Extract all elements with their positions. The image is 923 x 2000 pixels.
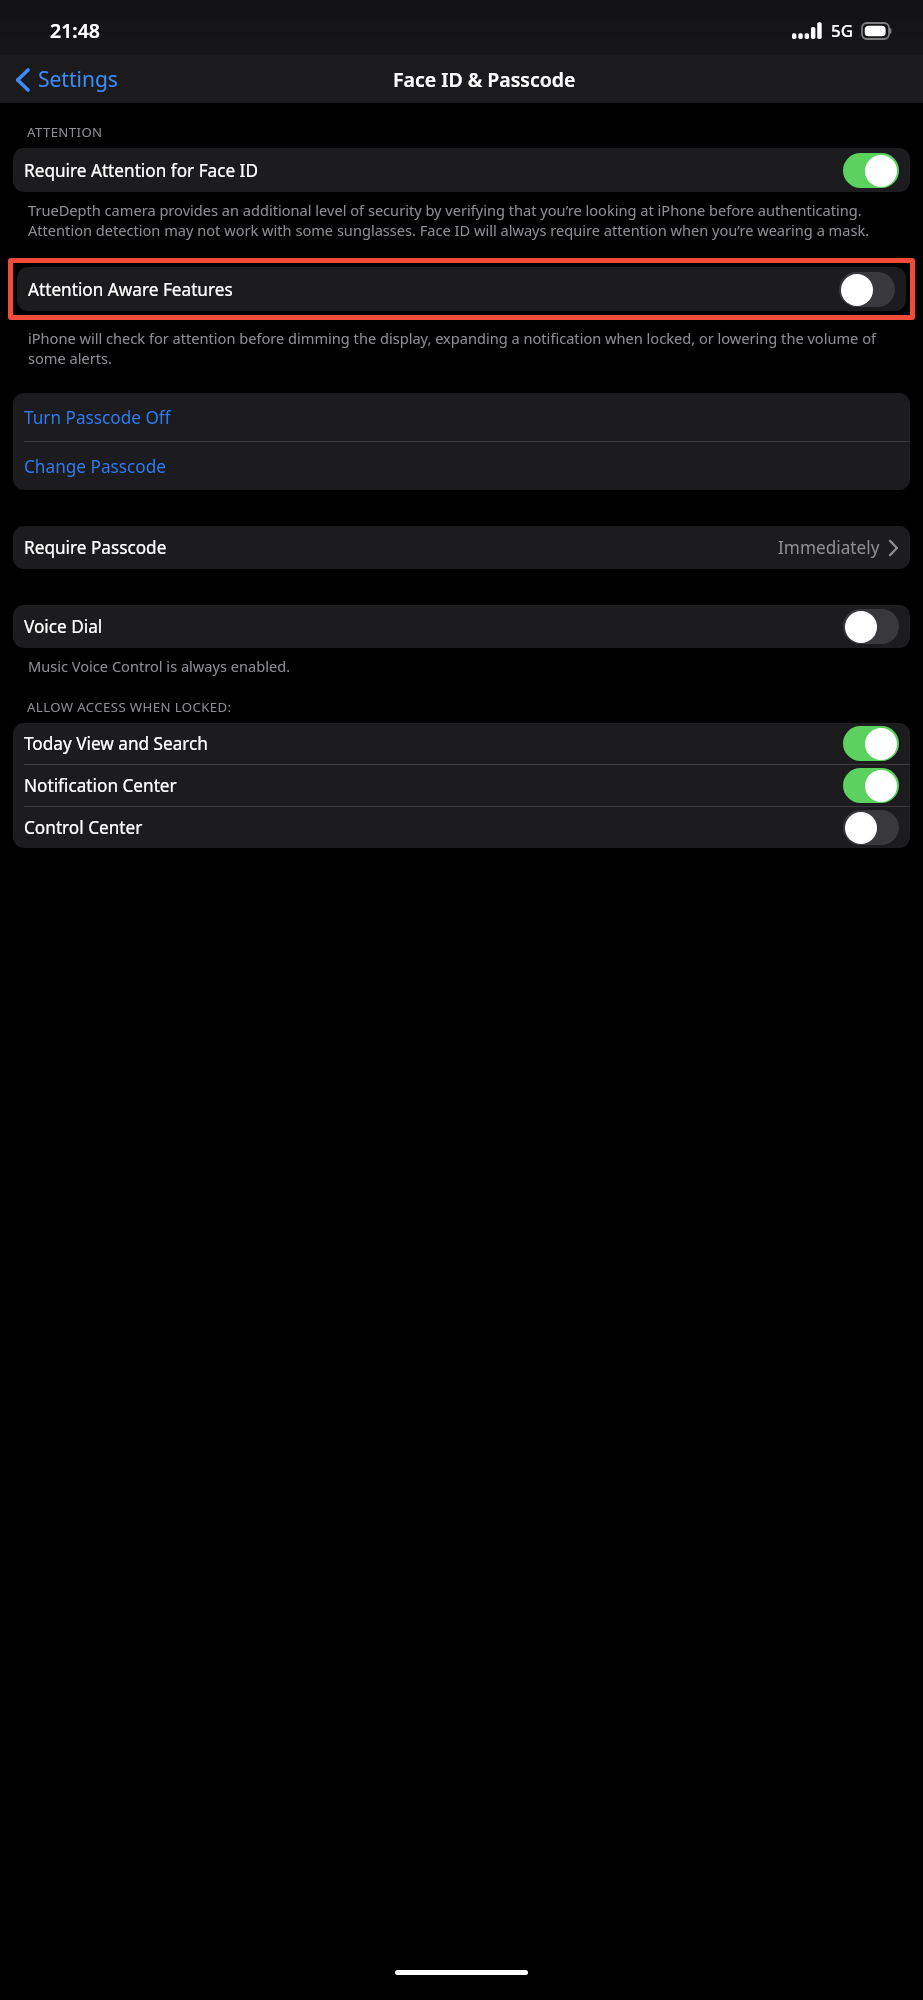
staticText: 21:48 <box>50 17 100 44</box>
staticText: Face ID & Passcode <box>393 66 576 93</box>
staticText: ALLOW ACCESS WHEN LOCKED: <box>27 698 232 716</box>
button[interactable]: Control Center <box>13 807 910 848</box>
staticText: TrueDepth camera provides an additional … <box>28 200 895 241</box>
staticText: Voice Dial <box>24 615 843 638</box>
staticText: Today View and Search <box>24 732 843 755</box>
staticText: 5G <box>831 19 854 42</box>
staticText: Immediately <box>778 536 880 559</box>
staticText: Change Passcode <box>24 455 166 478</box>
staticText: Settings <box>38 65 118 94</box>
button[interactable]: Change Passcode <box>13 442 910 490</box>
button[interactable]: Toggle off <box>839 272 895 307</box>
button[interactable]: Toggle off <box>843 609 899 644</box>
staticText: ATTENTION <box>27 123 103 141</box>
staticText: Turn Passcode Off <box>24 406 171 429</box>
button[interactable]: Toggle on <box>843 153 899 188</box>
button[interactable]: Turn Passcode Off <box>13 393 910 441</box>
button[interactable]: Settings <box>0 61 128 98</box>
staticText: Control Center <box>24 816 843 839</box>
button[interactable]: Voice Dial <box>13 605 910 648</box>
button[interactable]: Notification Center <box>13 765 910 806</box>
button[interactable]: Today View and Search <box>13 723 910 764</box>
button[interactable]: Require Attention for Face ID <box>13 148 910 192</box>
staticText: Require Passcode <box>24 536 778 559</box>
staticText: Require Attention for Face ID <box>24 159 843 182</box>
staticText: Music Voice Control is always enabled. <box>28 656 291 676</box>
button[interactable]: Toggle off <box>843 810 899 845</box>
staticText: iPhone will check for attention before d… <box>28 328 895 369</box>
button[interactable]: Toggle on <box>843 768 899 803</box>
staticText: Attention Aware Features <box>28 278 839 301</box>
button[interactable]: Require Passcode <box>13 526 910 569</box>
button[interactable]: Attention Aware Features <box>17 267 906 311</box>
button[interactable]: Toggle on <box>843 726 899 761</box>
staticText: Notification Center <box>24 774 843 797</box>
